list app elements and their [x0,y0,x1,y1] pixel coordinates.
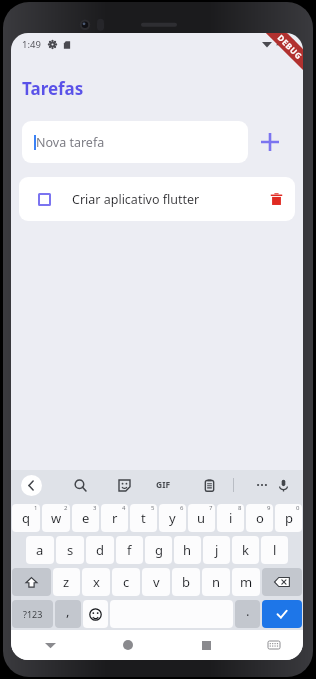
button[interactable]: Apagar [262,568,302,596]
staticText: v [153,573,160,591]
staticText: 7 [209,504,213,512]
button[interactable]: Pesquisar [68,470,92,500]
staticText: 9 [267,504,271,512]
staticText: r [112,509,118,527]
staticText: 2 [64,504,68,512]
staticText: 0 [296,504,300,512]
button[interactable]: j [203,536,230,564]
button[interactable]: i [217,504,244,532]
staticText: j [215,541,219,559]
button[interactable]: GIF [150,473,176,497]
staticText: u [197,509,206,527]
button[interactable]: s [56,536,84,564]
staticText: a [36,541,44,559]
button[interactable]: Concluir tarefa [19,177,295,221]
staticText: b [182,573,190,591]
staticText: e [82,509,90,527]
button[interactable]: Concluir tarefa [31,186,57,212]
button[interactable]: y [159,504,186,532]
staticText: 5 [151,504,155,512]
staticText: m [240,573,253,591]
button[interactable]: Adicionar tarefa [248,120,292,164]
staticText: d [96,541,104,559]
button[interactable]: l [261,536,288,564]
button[interactable]: ?123 [12,600,53,628]
button[interactable]: b [172,568,200,596]
button[interactable]: Recentes [167,630,245,660]
staticText: ?123 [23,608,43,620]
staticText: p [285,509,293,527]
staticText: 3 [93,504,97,512]
staticText: Tarefas [22,77,84,100]
staticText: 8 [238,504,242,512]
button[interactable]: Voltar [11,630,89,660]
button[interactable]: a [26,536,54,564]
button[interactable]: w [42,504,70,532]
staticText: z [63,573,70,591]
staticText: Nova tarefa [36,134,105,151]
button[interactable]: Fechar teclado [21,475,42,496]
staticText: f [127,541,132,559]
button[interactable]: Mais opções [250,470,274,500]
button[interactable]: c [112,568,140,596]
staticText: o [256,509,264,527]
button[interactable]: m [232,568,260,596]
button[interactable]: n [202,568,230,596]
staticText: c [123,573,130,591]
staticText: x [93,573,100,591]
button[interactable]: Área de transferência [197,470,221,500]
button[interactable]: d [86,536,114,564]
button[interactable]: r [101,504,128,532]
button[interactable]: Excluir tarefa [259,182,293,216]
button[interactable]: v [142,568,170,596]
button[interactable]: Alternar teclado [245,630,303,660]
button[interactable]: o [246,504,273,532]
staticText: , [66,602,70,620]
staticText: y [169,509,176,527]
button[interactable]: k [232,536,259,564]
staticText: 1:49 [22,38,41,51]
staticText: l [273,541,277,559]
button[interactable]: Figurinhas [112,470,136,500]
staticText: . [246,602,250,620]
button[interactable]: f [116,536,143,564]
button[interactable]: Shift [12,568,51,596]
button[interactable]: h [174,536,201,564]
staticText: 1 [34,504,38,512]
staticText: n [212,573,221,591]
staticText: i [229,509,233,527]
staticText: h [183,541,192,559]
button[interactable]: z [53,568,80,596]
button[interactable]: g [145,536,172,564]
button[interactable]: Nova tarefa [22,121,248,163]
staticText: k [242,541,249,559]
staticText: t [141,509,146,527]
button[interactable]: q [12,504,40,532]
button[interactable]: Enviar [262,600,302,628]
staticText: DEBUG [275,33,303,62]
staticText: g [155,541,163,559]
button[interactable]: . [235,600,260,628]
button[interactable]: Entrada por voz [271,473,295,497]
button[interactable]: e [72,504,99,532]
button[interactable]: Emoji [83,600,108,628]
button[interactable]: x [82,568,110,596]
staticText: w [51,509,62,527]
button[interactable]: t [130,504,157,532]
staticText: s [67,541,74,559]
button[interactable]: Início [89,630,167,660]
staticText: q [22,509,30,527]
staticText: GIF [156,479,171,491]
button[interactable]: u [188,504,215,532]
staticText: Criar aplicativo flutter [72,191,259,208]
staticText: 4 [122,504,126,512]
staticText: 6 [180,504,184,512]
button[interactable]: , [55,600,81,628]
button[interactable]: p [275,504,302,532]
